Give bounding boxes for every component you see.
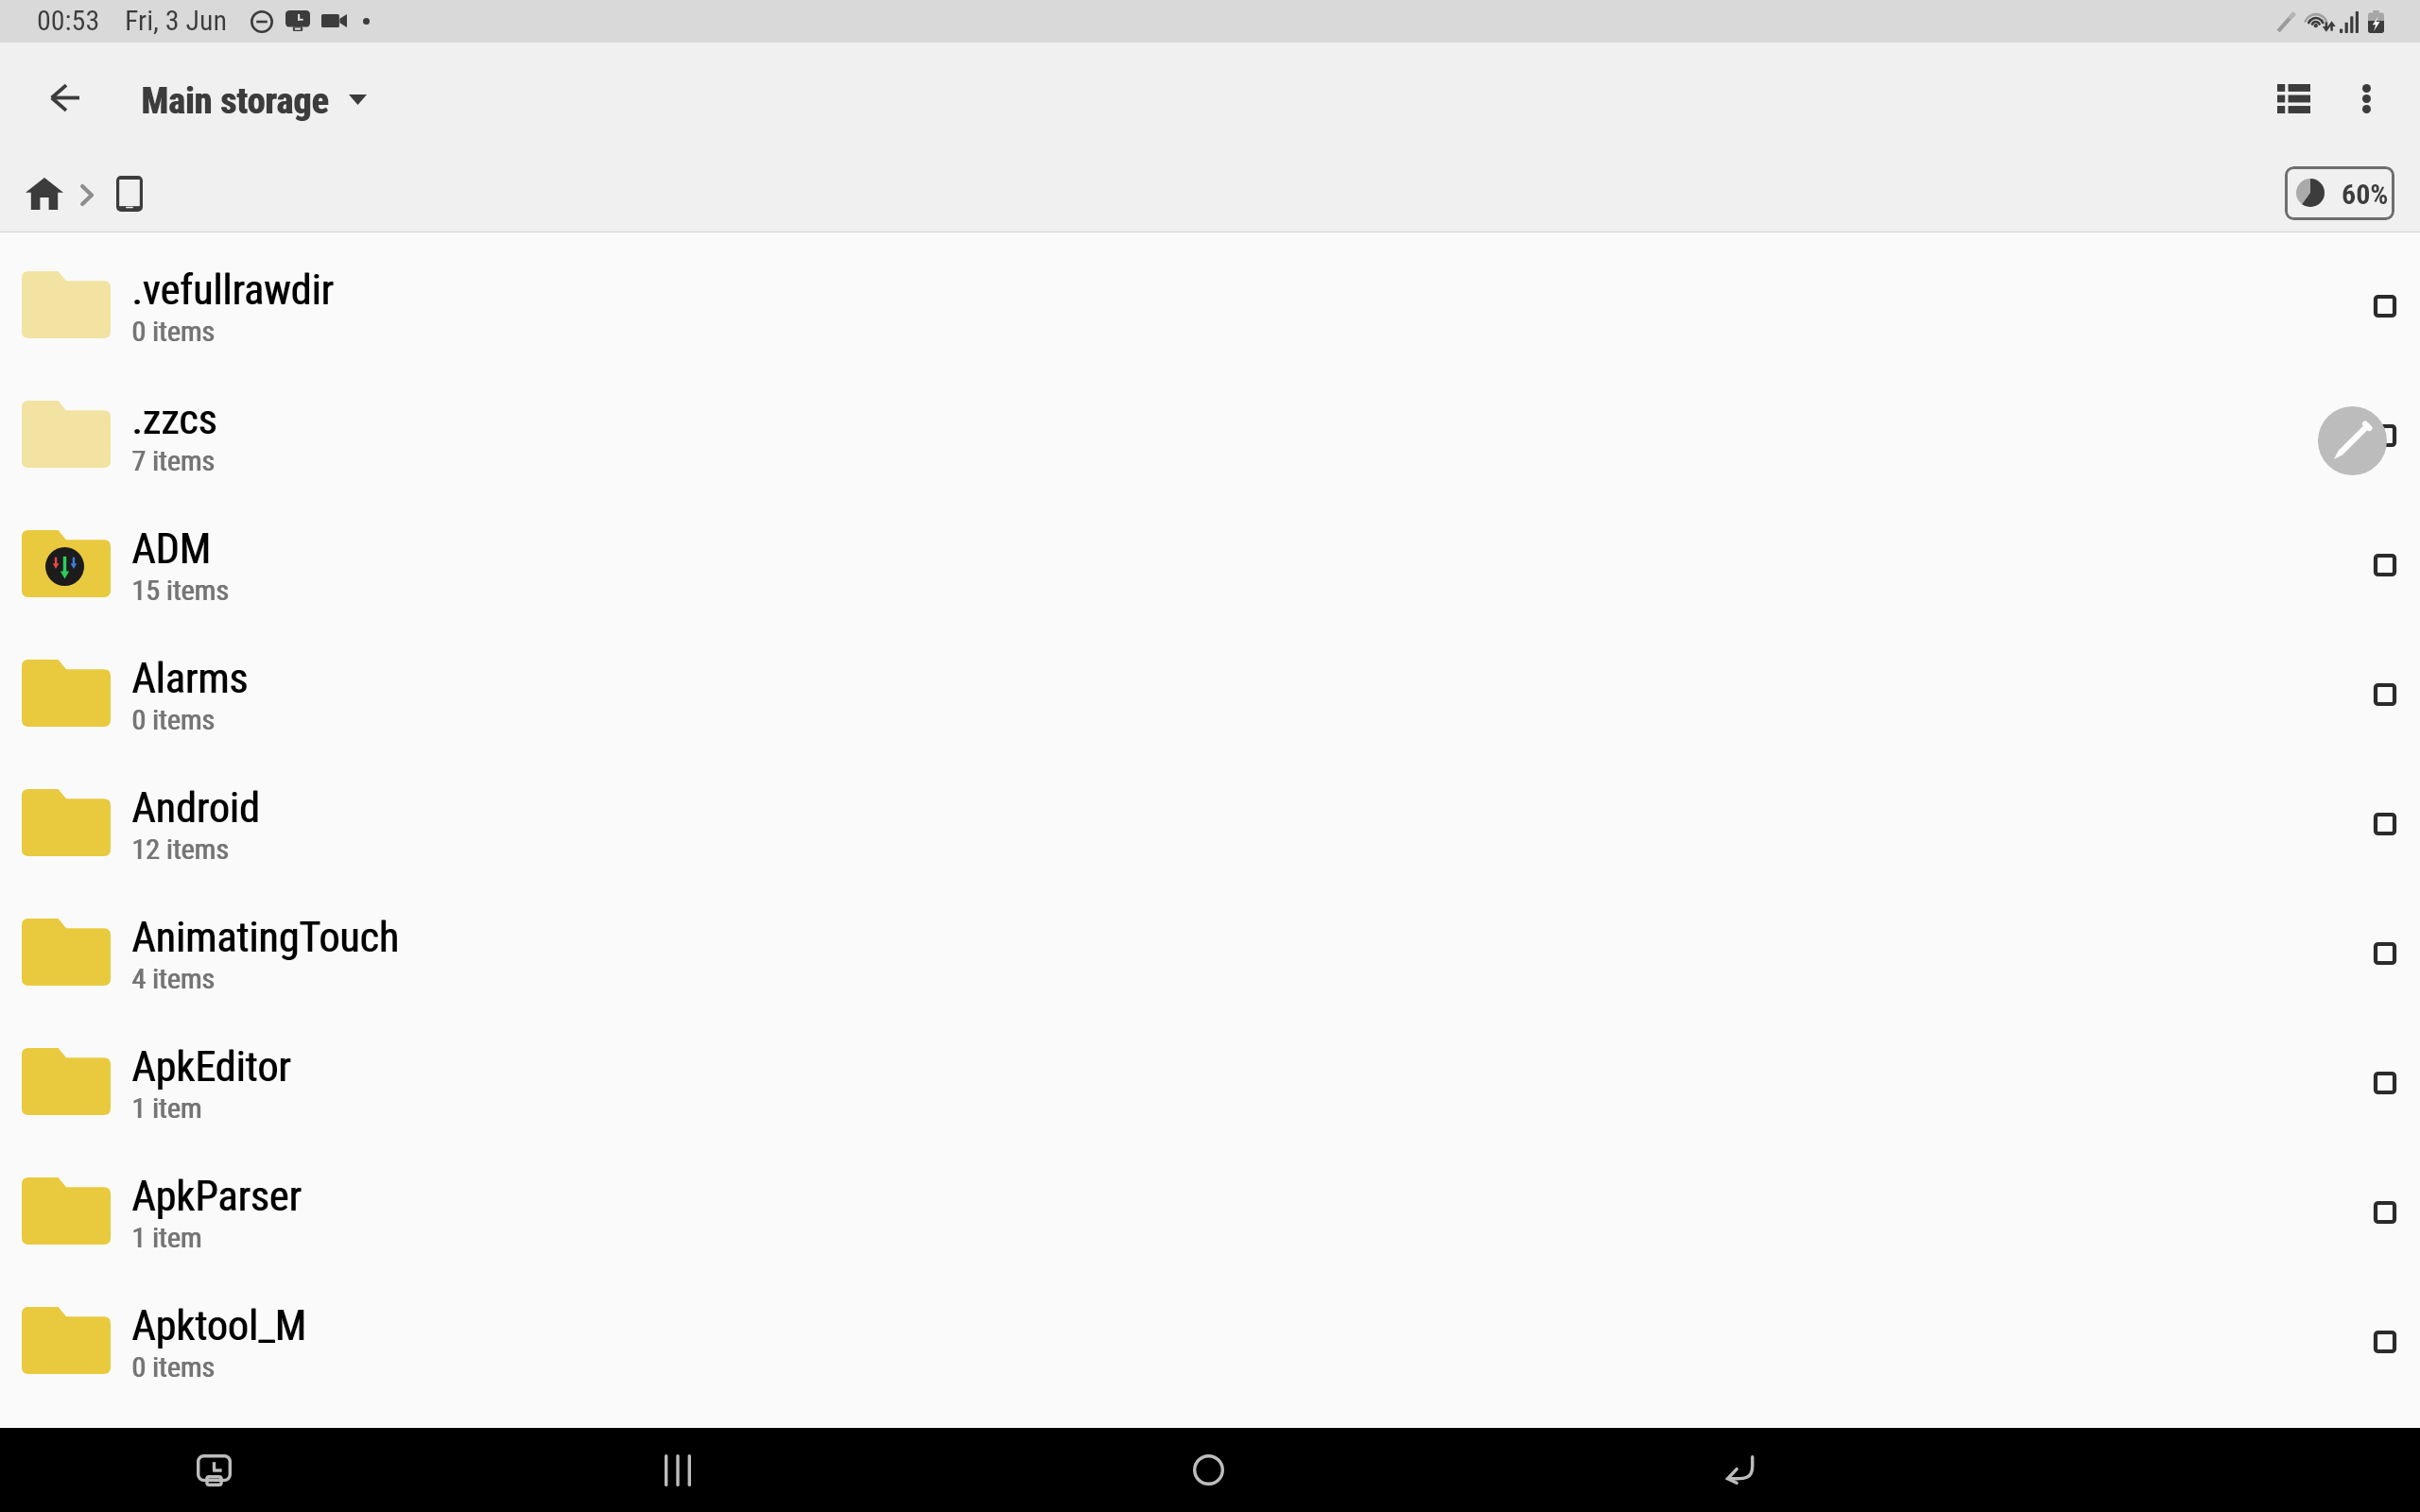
button[interactable]: 60% (2285, 166, 2394, 220)
staticText: 12 items (132, 833, 230, 866)
staticText: 15 items (131, 574, 229, 607)
button[interactable]: Select Alarms (2347, 657, 2420, 732)
staticText: .zzcs (131, 395, 217, 444)
staticText: ADM (132, 524, 212, 574)
button[interactable]: Edit (2318, 406, 2387, 475)
staticText: 1 item (132, 1091, 203, 1125)
button[interactable]: Select .vefullrawdir (2347, 268, 2420, 344)
staticText: Main storage (142, 80, 330, 123)
button[interactable]: Select AnimatingTouch (2347, 916, 2420, 991)
staticText: .vefullrawdir (132, 266, 335, 315)
staticText: ApkParser (132, 1172, 302, 1221)
staticText: 0 items (131, 703, 215, 736)
staticText: Alarms (131, 654, 249, 703)
staticText: ADM (131, 524, 211, 574)
staticText: 60% (2342, 178, 2389, 211)
button[interactable]: Home (1167, 1428, 1251, 1512)
button[interactable]: Screen timeout (172, 1428, 256, 1512)
button[interactable]: More options (2325, 57, 2408, 140)
button[interactable]: Select ADM (2347, 527, 2420, 603)
button[interactable]: ApkEditor (0, 1009, 2420, 1139)
button[interactable]: Internal storage (102, 166, 157, 221)
staticText: ApkEditor (131, 1042, 291, 1091)
staticText: AnimatingTouch (131, 913, 399, 962)
button[interactable]: Select ApkParser (2347, 1175, 2420, 1250)
staticText: .vefullrawdir (131, 266, 334, 315)
button[interactable]: Select ApkEditor (2347, 1045, 2420, 1121)
staticText: .zzcs (132, 395, 218, 444)
staticText: Android (132, 783, 261, 833)
staticText: 7 items (131, 444, 215, 477)
staticText: Main storage (141, 80, 329, 123)
button[interactable]: ADM (0, 491, 2420, 621)
staticText: Apktool_M (131, 1301, 306, 1350)
staticText: 1 item (132, 1221, 203, 1254)
staticText: AnimatingTouch (132, 913, 400, 962)
button[interactable]: Recents (635, 1428, 719, 1512)
staticText: 0 items (132, 703, 216, 736)
button[interactable]: ApkParser (0, 1139, 2420, 1268)
staticText: ApkEditor (132, 1042, 292, 1091)
staticText: 0 items (132, 315, 216, 348)
staticText: 0 items (131, 1350, 215, 1383)
staticText: 0 items (131, 315, 215, 348)
button[interactable]: AnimatingTouch (0, 880, 2420, 1009)
staticText: ApkParser (131, 1172, 302, 1221)
staticText: 1 item (131, 1091, 202, 1125)
button[interactable]: Back (1698, 1428, 1782, 1512)
staticText: 1 item (131, 1221, 202, 1254)
button[interactable]: Home (16, 165, 73, 222)
button[interactable]: Select Android (2347, 786, 2420, 862)
staticText: Android (131, 783, 260, 833)
button[interactable]: Back (23, 56, 106, 139)
staticText: 12 items (131, 833, 229, 866)
button[interactable]: List view (2252, 57, 2335, 140)
staticText: 7 items (132, 444, 216, 477)
staticText: Fri, 3 Jun (125, 4, 228, 37)
staticText: 00:53 (37, 4, 100, 37)
button[interactable]: .zzcs (0, 362, 2420, 491)
button[interactable]: Main storage, change storage (132, 61, 378, 129)
button[interactable]: Select .zzcs (2347, 398, 2420, 473)
button[interactable]: Alarms (0, 621, 2420, 750)
button[interactable]: Apktool_M (0, 1268, 2420, 1398)
button[interactable]: Select Apktool_M (2347, 1304, 2420, 1380)
staticText: 4 items (131, 962, 215, 995)
staticText: 4 items (132, 962, 216, 995)
button[interactable]: .vefullrawdir (0, 232, 2420, 362)
staticText: Alarms (132, 654, 250, 703)
staticText: 0 items (132, 1350, 216, 1383)
button[interactable]: Android (0, 750, 2420, 880)
staticText: 15 items (132, 574, 230, 607)
staticText: Apktool_M (132, 1301, 307, 1350)
